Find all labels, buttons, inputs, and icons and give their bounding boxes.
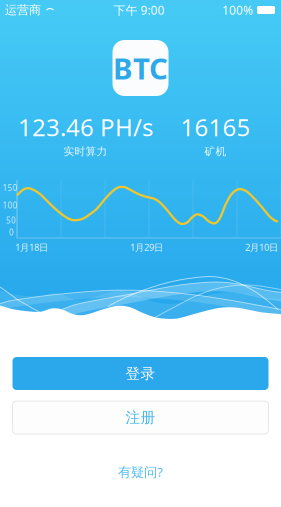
staticText: 运营商 xyxy=(5,3,41,17)
staticText: 下午 9:00 xyxy=(113,2,164,18)
staticText: 有疑问? xyxy=(118,463,163,481)
staticText: 注册 xyxy=(125,408,155,426)
staticText: 123.46 PH/s xyxy=(18,111,153,143)
staticText: 0 xyxy=(9,227,14,238)
button[interactable]: 注册 xyxy=(12,401,268,434)
button[interactable]: 登录 xyxy=(12,357,268,390)
staticText: 16165 xyxy=(180,111,250,143)
staticText: 100 xyxy=(2,200,17,211)
staticText: 100% xyxy=(222,2,253,18)
staticText: 1月18日 xyxy=(15,241,48,253)
staticText: 50 xyxy=(6,215,16,226)
staticText: 150 xyxy=(2,183,17,193)
button[interactable]: 有疑问? xyxy=(118,463,163,481)
staticText: 矿机 xyxy=(204,145,226,158)
staticText: 2月10日 xyxy=(245,241,278,253)
staticText: BTC xyxy=(113,48,168,87)
staticText: 1月29日 xyxy=(130,241,163,253)
staticText: 实时算力 xyxy=(63,145,107,158)
staticText: 登录 xyxy=(125,364,155,382)
